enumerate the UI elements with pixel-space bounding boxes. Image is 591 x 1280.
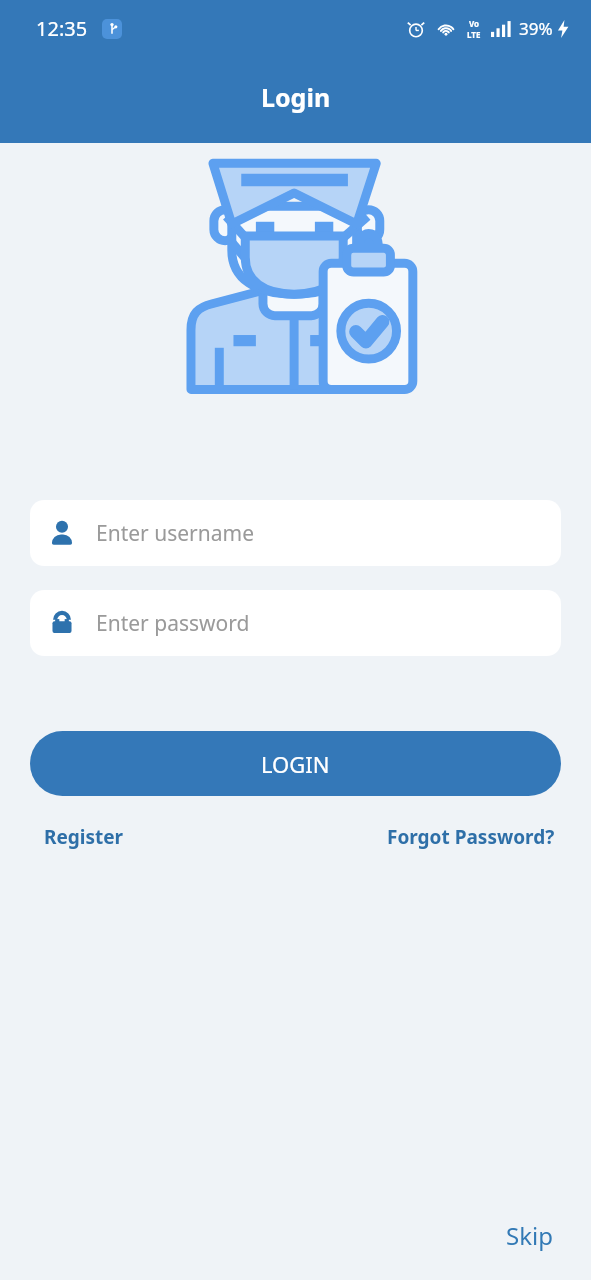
staticText: Forgot Password? [387, 824, 555, 850]
button[interactable]: Skip [496, 1213, 563, 1258]
staticText: 39% [519, 17, 553, 40]
button[interactable]: Register [30, 818, 138, 856]
staticText: Vo [469, 18, 480, 29]
staticText: Register [44, 824, 124, 850]
other: Doctor with clipboard illustration [178, 155, 414, 393]
staticText: LTE [467, 29, 481, 40]
staticText: LOGIN [261, 749, 330, 779]
button[interactable]: LOGIN [30, 731, 561, 796]
button[interactable]: Enter username [30, 500, 561, 566]
staticText: Skip [506, 1219, 553, 1252]
staticText: Login [261, 80, 331, 114]
staticText: Enter password [96, 609, 250, 638]
button[interactable]: Enter password [30, 590, 561, 656]
staticText: 12:35 [36, 15, 88, 42]
staticText: Enter username [96, 519, 255, 548]
button[interactable]: Forgot Password? [381, 818, 561, 856]
